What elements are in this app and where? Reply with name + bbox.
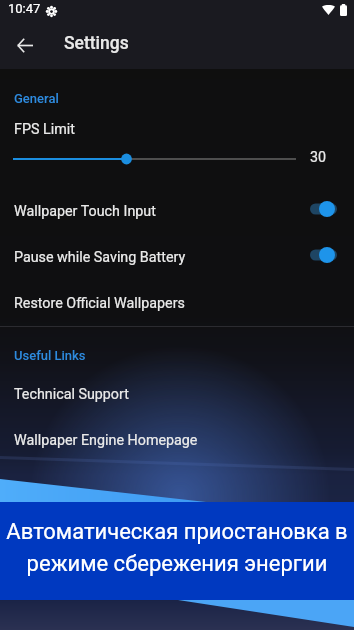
staticText: 10:47 bbox=[8, 1, 41, 16]
staticText: Wallpaper Touch Input bbox=[14, 203, 156, 220]
staticText: Wallpaper Engine Homepage bbox=[14, 432, 198, 449]
staticText: Pause while Saving Battery bbox=[14, 249, 186, 266]
staticText: Useful Links bbox=[14, 348, 86, 363]
button[interactable]: Wallpaper Touch Input bbox=[0, 188, 354, 234]
button[interactable]: Back bbox=[7, 28, 42, 63]
button[interactable]: Restore Official Wallpapers bbox=[0, 280, 354, 326]
staticText: FPS Limit bbox=[14, 121, 75, 138]
button[interactable]: Автоматическая приостановка в режиме сбе… bbox=[0, 502, 354, 600]
staticText: 30 bbox=[310, 149, 327, 166]
button[interactable]: Wallpaper Engine Homepage bbox=[0, 417, 354, 463]
staticText: Restore Official Wallpapers bbox=[14, 295, 185, 312]
button[interactable]: Technical Support bbox=[0, 371, 354, 417]
staticText: Settings bbox=[64, 33, 129, 54]
button[interactable]: Pause while Saving Battery bbox=[0, 234, 354, 280]
button[interactable]: FPS Limit bbox=[0, 112, 354, 170]
staticText: General bbox=[14, 91, 59, 106]
staticText: Technical Support bbox=[14, 386, 129, 403]
staticText: Автоматическая приостановка в режиме сбе… bbox=[0, 519, 354, 576]
